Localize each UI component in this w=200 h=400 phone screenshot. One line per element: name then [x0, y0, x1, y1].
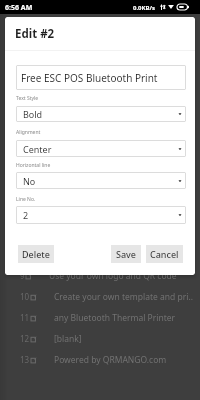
button[interactable]: 13: [0, 349, 200, 370]
staticText: Alignment: [16, 129, 41, 136]
button[interactable]: Cancel: [146, 245, 183, 263]
staticText: Cancel: [150, 248, 179, 260]
button[interactable]: 10: [0, 286, 200, 307]
staticText: Text Style: [16, 95, 39, 102]
staticText: 9: [20, 270, 25, 281]
staticText: Free ESC POS Bluetooth Print: [21, 71, 158, 85]
staticText: Edit #2: [15, 26, 55, 42]
staticText: 2: [23, 209, 29, 221]
button[interactable]: 9: [0, 265, 200, 286]
staticText: Center: [23, 143, 52, 155]
staticText: No: [23, 175, 36, 187]
other: Edit row: [31, 315, 37, 321]
button[interactable]: Center: [16, 140, 186, 157]
button[interactable]: 2: [16, 206, 186, 224]
staticText: Horizontal line: [16, 162, 51, 169]
staticText: Use your own logo and QR code: [49, 270, 177, 282]
staticText: Delete: [22, 248, 50, 260]
staticText: Bold: [23, 108, 43, 120]
button[interactable]: Save: [111, 245, 141, 263]
button[interactable]: 11: [0, 307, 200, 328]
staticText: 10: [20, 291, 30, 302]
button[interactable]: Delete: [18, 245, 54, 263]
staticText: Line No.: [16, 196, 36, 203]
other: Edit row: [31, 294, 37, 300]
other: Edit row: [31, 357, 37, 363]
staticText: any Bluetooth Thermal Printer: [54, 312, 176, 324]
button[interactable]: Bold: [16, 106, 186, 122]
other: Edit row: [31, 336, 37, 342]
staticText: Powered by QRMANGO.com: [54, 354, 167, 366]
button[interactable]: Free ESC POS Bluetooth Print: [16, 65, 186, 90]
other: Edit row: [26, 273, 32, 279]
staticText: 0.0KB/s: [133, 4, 156, 12]
staticText: 11: [20, 312, 30, 323]
staticText: Save: [116, 248, 137, 260]
staticText: Create your own template and pri..: [54, 291, 193, 303]
staticText: 12: [20, 333, 30, 344]
button[interactable]: 12: [0, 328, 200, 349]
staticText: 6:56 AM: [5, 3, 33, 13]
button[interactable]: No: [16, 172, 186, 189]
staticText: 13: [20, 354, 30, 365]
staticText: [blank]: [54, 333, 82, 345]
